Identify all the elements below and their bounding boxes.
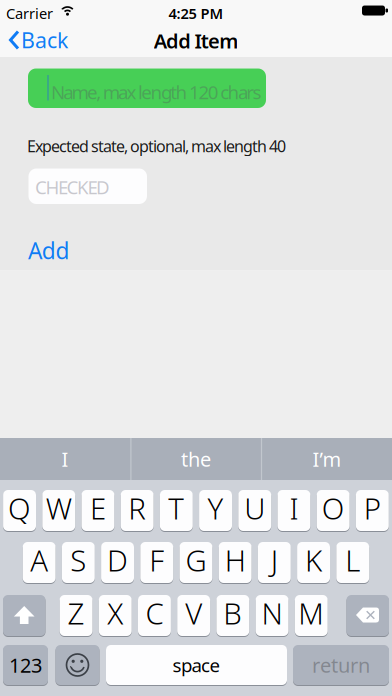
button[interactable]: F [140, 542, 173, 583]
staticText: X [107, 593, 123, 632]
staticText: O [322, 488, 345, 527]
button[interactable]: L [336, 542, 369, 583]
staticText: R [128, 488, 146, 527]
staticText: H [225, 540, 246, 579]
button[interactable]: U [238, 490, 271, 531]
staticText: L [345, 540, 360, 579]
button[interactable]: space [106, 645, 287, 685]
staticText: E [90, 488, 106, 527]
staticText: Carrier [6, 3, 53, 23]
staticText: I [289, 488, 298, 527]
button[interactable]: I [0, 438, 130, 480]
staticText: S [70, 540, 86, 579]
staticText: J [271, 540, 278, 579]
staticText: I [61, 446, 68, 472]
button[interactable]: CHECKED [28, 168, 147, 204]
staticText: Expected state, optional, max length 40 [27, 135, 286, 157]
staticText: Name, max length 120 chars [51, 79, 261, 104]
button[interactable]: Shift [3, 595, 392, 696]
staticText: U [244, 488, 265, 527]
staticText: space [172, 653, 220, 677]
staticText: Q [8, 488, 31, 527]
button[interactable]: G [179, 542, 212, 583]
button[interactable]: I’m [262, 438, 392, 480]
button[interactable]: X [99, 595, 132, 636]
button[interactable]: H [219, 542, 252, 583]
button[interactable]: return [293, 645, 389, 685]
button[interactable]: S [62, 542, 95, 583]
button[interactable]: P [356, 490, 389, 531]
staticText: I’m [312, 446, 341, 472]
staticText: A [30, 540, 48, 579]
staticText: F [149, 540, 164, 579]
button[interactable]: 123 [3, 645, 48, 685]
staticText: K [305, 540, 322, 579]
button[interactable]: W [42, 490, 75, 531]
button[interactable]: J [258, 542, 291, 583]
button[interactable]: Q [3, 490, 36, 531]
button[interactable]: B [216, 595, 249, 636]
staticText: N [262, 593, 283, 632]
button[interactable]: A [23, 542, 56, 583]
staticText: M [298, 593, 324, 632]
staticText: D [107, 540, 128, 579]
staticText: G [185, 540, 206, 579]
staticText: Back [21, 26, 68, 54]
staticText: W [46, 488, 72, 527]
button[interactable]: D [101, 542, 134, 583]
staticText: Z [67, 593, 84, 632]
staticText: the [181, 446, 211, 472]
button[interactable]: Y [199, 490, 232, 531]
staticText: Y [207, 488, 223, 527]
staticText: 123 [9, 652, 42, 678]
staticText: T [168, 488, 184, 527]
staticText: CHECKED [35, 174, 110, 199]
button[interactable]: M [295, 595, 328, 636]
button[interactable]: R [121, 490, 154, 531]
button[interactable]: Back [0, 22, 76, 58]
staticText: Add [28, 235, 69, 266]
button[interactable]: T [160, 490, 193, 531]
button[interactable]: Name, max length 120 chars [28, 68, 266, 108]
staticText: B [223, 593, 242, 632]
staticText: C [145, 593, 163, 632]
staticText: Add Item [154, 27, 238, 54]
button[interactable]: E [81, 490, 114, 531]
button[interactable]: Add [28, 235, 69, 266]
button[interactable]: Delete [346, 595, 392, 696]
button[interactable]: Z [60, 595, 92, 636]
button[interactable]: O [317, 490, 350, 531]
button[interactable]: I [277, 490, 310, 531]
button[interactable]: K [297, 542, 330, 583]
staticText: return [312, 652, 370, 678]
button[interactable]: C [138, 595, 171, 636]
staticText: P [364, 488, 381, 527]
staticText: V [185, 593, 202, 632]
button[interactable]: V [177, 595, 210, 636]
button[interactable]: the [131, 438, 261, 480]
button[interactable]: N [256, 595, 288, 636]
button[interactable]: Emoji [55, 645, 392, 696]
staticText: 4:25 PM [168, 3, 223, 23]
